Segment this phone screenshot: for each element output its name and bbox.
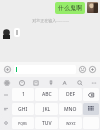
button[interactable]: Translate xyxy=(60,78,69,87)
button[interactable]: Contact avatar xyxy=(1,28,12,39)
staticText: GHI xyxy=(18,106,28,113)
button[interactable]: Search xyxy=(75,78,84,87)
button[interactable]: ABC xyxy=(35,88,58,101)
staticText: 对方正在输入………… xyxy=(32,18,69,23)
button[interactable]: Mic xyxy=(46,78,55,87)
button[interactable]: More xyxy=(88,65,97,74)
button[interactable]: Sticker xyxy=(2,78,11,87)
button[interactable]: Function xyxy=(1,88,11,101)
button[interactable]: Function xyxy=(1,103,11,115)
staticText: ABC xyxy=(42,91,52,98)
button[interactable]: TUV xyxy=(35,117,58,129)
button[interactable]: JKL xyxy=(35,103,58,115)
staticText: MNO xyxy=(64,106,77,113)
staticText: 什么鬼啊 xyxy=(58,4,82,12)
button[interactable]: Settings xyxy=(89,78,98,87)
staticText: JKL xyxy=(43,106,51,113)
staticText: PQRS xyxy=(18,121,28,126)
button[interactable]: Emoji xyxy=(78,65,87,74)
button[interactable]: 1 xyxy=(12,88,34,101)
button[interactable]: DEF xyxy=(59,88,82,101)
button[interactable]: Symbols xyxy=(83,103,99,115)
button[interactable]: Avatar xyxy=(87,2,98,13)
staticText: TUV xyxy=(42,120,52,127)
button[interactable]: PQRS xyxy=(12,117,34,129)
button[interactable]: 什么鬼啊 xyxy=(55,2,85,14)
staticText: 1 xyxy=(22,91,25,98)
button[interactable] xyxy=(14,28,20,37)
staticText: DEF xyxy=(66,91,76,98)
button[interactable]: Voice xyxy=(17,78,26,87)
button[interactable]: MNO xyxy=(59,103,82,115)
button[interactable]: GHI xyxy=(12,103,34,115)
button[interactable]: Voice input xyxy=(3,65,12,74)
button[interactable]: Function xyxy=(1,117,11,129)
button[interactable]: WXYZ xyxy=(59,117,82,129)
button[interactable]: Delete xyxy=(83,88,99,101)
button[interactable]: Clipboard xyxy=(31,78,40,87)
staticText: WXYZ xyxy=(66,121,76,126)
button[interactable] xyxy=(14,65,76,74)
